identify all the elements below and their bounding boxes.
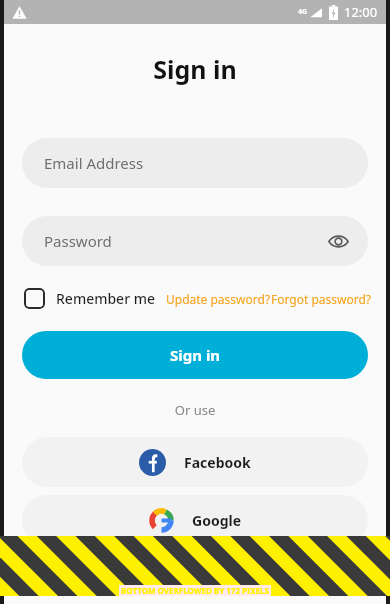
button[interactable]: Facebook: [22, 437, 368, 487]
button[interactable]: Update password?: [166, 291, 271, 307]
staticText: 12:00: [344, 3, 378, 21]
staticText: Or use: [4, 401, 386, 419]
button[interactable]: Email Address: [22, 138, 368, 188]
staticText: Sign in: [4, 52, 386, 86]
button[interactable]: Forgot password?: [271, 291, 372, 307]
staticText: Password: [44, 231, 112, 251]
staticText: Update password?: [166, 291, 271, 307]
staticText: BOTTOM OVERFLOWED BY 172 PIXELS: [121, 585, 269, 596]
staticText: Remember me: [56, 289, 156, 308]
staticText: Facebook: [184, 453, 251, 472]
button[interactable]: Google: [22, 495, 368, 545]
staticText: Google: [192, 511, 242, 530]
button[interactable]: Sign in: [22, 331, 368, 379]
staticText: 4G: [298, 7, 308, 17]
staticText: Forgot password?: [271, 291, 372, 307]
staticText: Sign in: [170, 345, 221, 365]
staticText: Email Address: [44, 153, 144, 173]
button[interactable]: Password: [22, 216, 368, 266]
button[interactable]: Show password: [322, 225, 354, 257]
button[interactable]: Remember me: [24, 288, 156, 309]
